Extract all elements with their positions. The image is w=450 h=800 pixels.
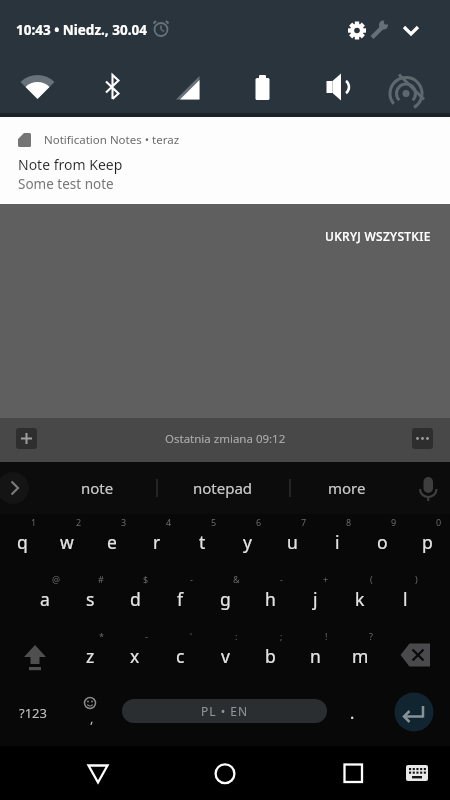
button[interactable] (14, 426, 40, 452)
staticText: b (265, 644, 276, 668)
button[interactable] (396, 16, 426, 46)
staticText: 9 (391, 516, 397, 528)
staticText: w (60, 530, 74, 554)
staticText: 10:43 • Niedz., 30.04 (16, 21, 147, 39)
button[interactable] (165, 65, 210, 110)
button[interactable]: s (68, 581, 112, 617)
button[interactable] (122, 699, 327, 723)
button[interactable] (410, 470, 446, 506)
staticText: - (280, 573, 283, 585)
staticText: note (81, 478, 114, 498)
button[interactable] (390, 65, 435, 110)
button[interactable]: h (248, 581, 292, 617)
button[interactable]: note (52, 470, 142, 506)
button[interactable]: c (158, 638, 202, 674)
staticText: y (243, 530, 252, 554)
button[interactable] (331, 752, 375, 794)
staticText: ' (190, 630, 193, 642)
staticText: z (86, 644, 95, 668)
staticText: p (422, 530, 433, 554)
button[interactable] (0, 470, 36, 506)
button[interactable]: o (360, 524, 404, 560)
button[interactable]: notepad (172, 470, 274, 506)
button[interactable] (410, 426, 436, 452)
button[interactable] (72, 695, 108, 731)
button[interactable] (315, 65, 360, 110)
button[interactable]: a (23, 581, 67, 617)
staticText: m (352, 644, 369, 668)
staticText: + (323, 573, 329, 585)
button[interactable] (75, 752, 119, 794)
button[interactable]: b (248, 638, 292, 674)
staticText: : (235, 630, 238, 642)
button[interactable]: i (315, 524, 359, 560)
staticText: h (265, 587, 276, 611)
staticText: UKRYJ WSZYSTKIE (325, 228, 431, 244)
button[interactable] (90, 65, 135, 110)
button[interactable] (392, 691, 436, 733)
staticText: . (350, 702, 355, 724)
button[interactable]: u (270, 524, 314, 560)
button[interactable]: l (383, 581, 427, 617)
button[interactable]: d (113, 581, 157, 617)
button[interactable]: x (113, 638, 157, 674)
button[interactable]: k (338, 581, 382, 617)
staticText: Ostatnia zmiana 09:12 (165, 431, 286, 447)
button[interactable] (0, 117, 450, 204)
staticText: ! (325, 630, 328, 642)
button[interactable]: j (293, 581, 337, 617)
staticText: - (145, 630, 148, 642)
button[interactable]: . (340, 698, 364, 728)
staticText: , (90, 709, 94, 725)
button[interactable]: e (90, 524, 134, 560)
button[interactable]: v (203, 638, 247, 674)
staticText: i (335, 530, 340, 554)
staticText: more (328, 478, 366, 498)
button[interactable] (398, 755, 436, 791)
staticText: 2 (76, 516, 82, 528)
button[interactable]: r (135, 524, 179, 560)
staticText: o (377, 530, 388, 554)
button[interactable]: m (338, 638, 382, 674)
button[interactable] (15, 65, 60, 110)
staticText: ? (369, 630, 373, 642)
staticText: ( (370, 573, 373, 585)
button[interactable]: ?123 (8, 695, 58, 731)
button[interactable]: y (225, 524, 269, 560)
staticText: r (153, 530, 161, 554)
staticText: 6 (256, 516, 262, 528)
staticText: * (99, 630, 104, 642)
staticText: d (130, 587, 141, 611)
staticText: notepad (193, 478, 253, 498)
staticText: f (177, 587, 184, 611)
button[interactable]: PL • EN (122, 699, 327, 723)
button[interactable]: q (0, 524, 44, 560)
staticText: k (355, 587, 365, 611)
button[interactable]: f (158, 581, 202, 617)
button[interactable] (203, 752, 247, 794)
staticText: # (98, 573, 104, 585)
button[interactable]: g (203, 581, 247, 617)
staticText: t (199, 530, 206, 554)
staticText: s (86, 587, 95, 611)
button[interactable]: more (302, 470, 392, 506)
button[interactable]: n (293, 638, 337, 674)
staticText: l (403, 587, 408, 611)
staticText: Notification Notes • teraz (44, 132, 180, 148)
staticText: & (233, 573, 240, 585)
button[interactable] (240, 65, 285, 110)
staticText: q (17, 530, 28, 554)
button[interactable] (393, 637, 437, 675)
button[interactable]: p (405, 524, 449, 560)
button[interactable] (340, 15, 374, 47)
staticText: a (40, 587, 50, 611)
button[interactable] (13, 637, 57, 675)
staticText: PL • EN (201, 703, 249, 719)
staticText: - (190, 573, 193, 585)
button[interactable]: w (45, 524, 89, 560)
staticText: ; (280, 630, 283, 642)
button[interactable]: t (180, 524, 224, 560)
button[interactable]: z (68, 638, 112, 674)
button[interactable]: UKRYJ WSZYSTKIE (0, 226, 431, 246)
staticText: j (313, 587, 318, 611)
